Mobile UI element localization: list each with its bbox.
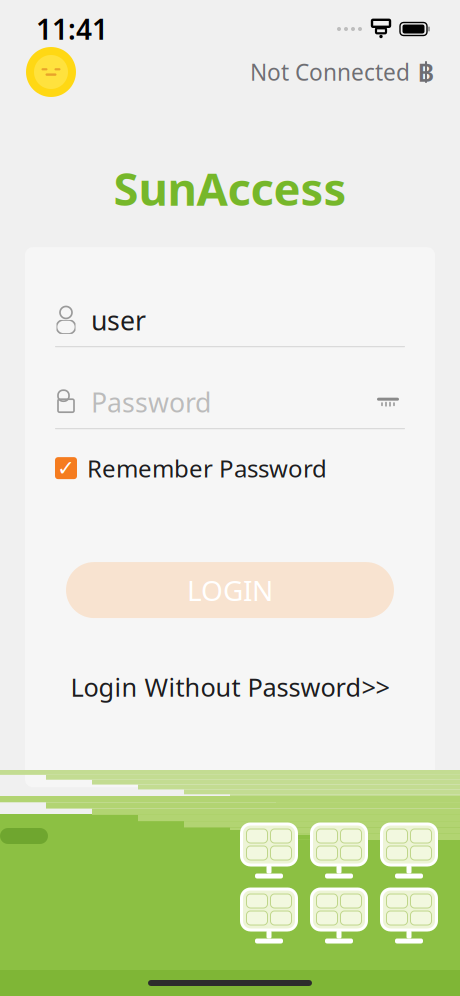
staticText: user — [91, 302, 146, 338]
button[interactable]: LOGIN — [66, 562, 394, 618]
staticText: ✓ — [57, 456, 75, 480]
button[interactable]: ✓ — [55, 448, 327, 488]
staticText: 11:41 — [36, 10, 108, 48]
staticText: Not Connected — [250, 57, 410, 87]
staticText: Password — [91, 384, 211, 420]
button[interactable]: Login Without Password>> — [60, 664, 399, 710]
button[interactable]: Show password — [371, 388, 405, 416]
staticText: LOGIN — [187, 571, 273, 609]
staticText: Login Without Password>> — [70, 670, 389, 704]
staticText: B — [417, 55, 434, 89]
staticText: SunAccess — [113, 158, 346, 218]
staticText: Remember Password — [87, 452, 327, 484]
